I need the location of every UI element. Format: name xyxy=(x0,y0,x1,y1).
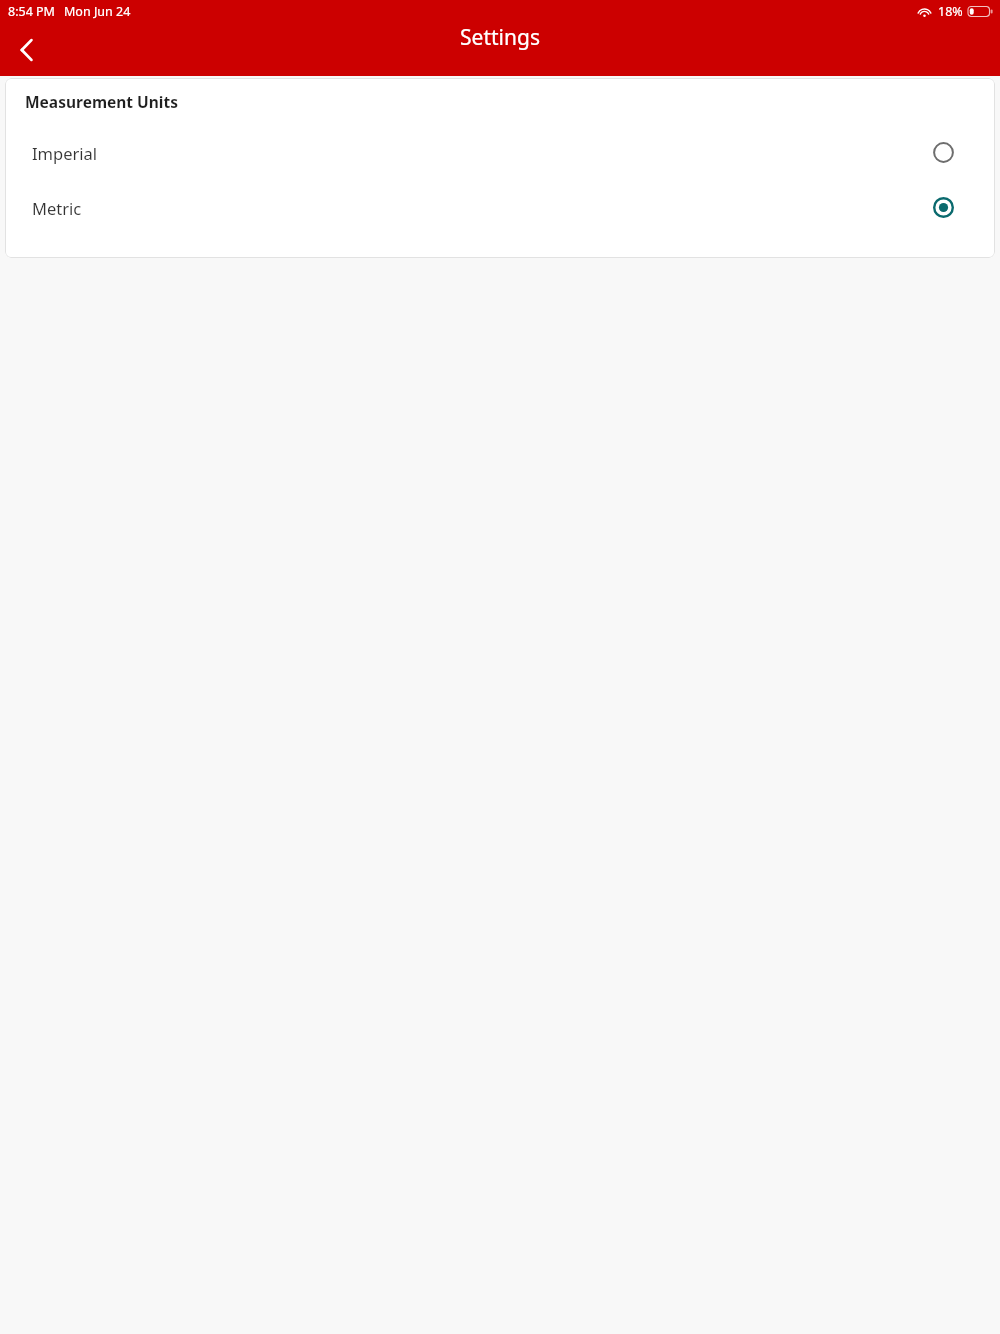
staticText: 8:54 PM xyxy=(8,3,55,20)
staticText: Imperial xyxy=(32,142,98,164)
button[interactable]: Back xyxy=(0,23,54,76)
button[interactable]: Imperial xyxy=(5,125,995,180)
staticText: Measurement Units xyxy=(25,91,179,112)
button[interactable]: Metric xyxy=(5,180,995,235)
staticText: 18% xyxy=(938,3,963,20)
staticText: Metric xyxy=(32,197,82,219)
staticText: Settings xyxy=(460,23,540,52)
staticText: Mon Jun 24 xyxy=(64,3,131,20)
